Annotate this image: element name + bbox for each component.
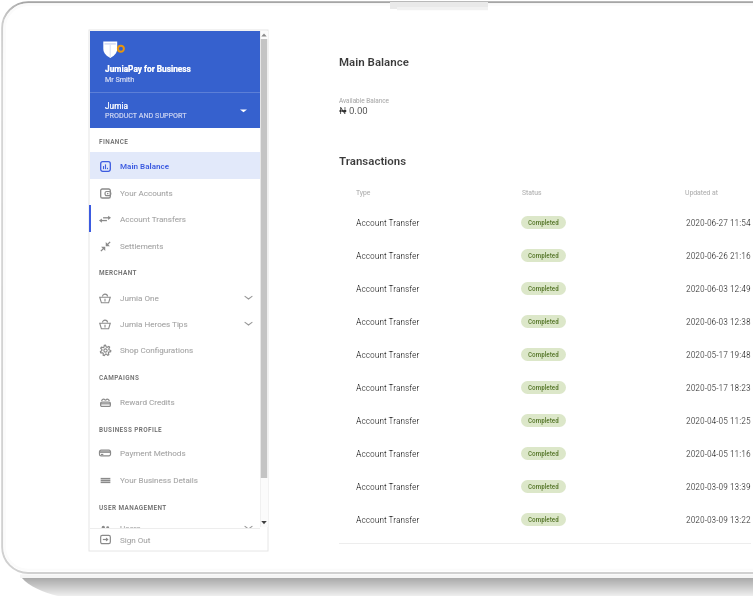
button[interactable]: Jumia	[90, 95, 260, 125]
button[interactable]: Account Transfer	[339, 503, 751, 536]
button[interactable]: Users	[90, 514, 260, 528]
staticText: Your Accounts	[120, 188, 173, 197]
staticText: 2020-06-03 12:38	[686, 317, 751, 327]
staticText: Type	[356, 189, 371, 197]
staticText: Completed	[528, 516, 559, 523]
staticText: Account Transfer	[356, 416, 420, 426]
staticText: CAMPAIGNS	[99, 374, 140, 382]
staticText: 2020-06-26 21:16	[686, 251, 751, 261]
staticText: 2020-03-09 13:39	[686, 482, 751, 492]
staticText: 2020-05-17 19:48	[686, 350, 751, 360]
other: Switch account	[240, 107, 247, 114]
staticText: JumiaPay for Business	[105, 64, 191, 74]
staticText: Main Balance	[339, 55, 409, 68]
staticText: Your Business Details	[120, 475, 198, 484]
staticText: Available Balance	[339, 97, 389, 105]
staticText: 2020-04-05 11:16	[686, 449, 751, 459]
staticText: Reward Credits	[120, 397, 175, 406]
staticText: Status	[522, 189, 542, 197]
staticText: Main Balance	[120, 161, 170, 170]
button[interactable]: Account Transfer	[339, 305, 751, 338]
button[interactable]: Reward Credits	[90, 388, 260, 415]
button[interactable]: Account Transfer	[339, 239, 751, 272]
button[interactable]: Your Accounts	[90, 179, 260, 206]
staticText: Completed	[528, 318, 559, 325]
staticText: Account Transfer	[356, 317, 420, 327]
staticText: Settlements	[120, 241, 164, 250]
button[interactable]: Shop Configurations	[90, 336, 260, 363]
staticText: Completed	[528, 417, 559, 424]
staticText: MERCHANT	[99, 269, 137, 277]
button[interactable]: Your Business Details	[90, 466, 260, 493]
button[interactable]: Jumia Heroes Tips	[90, 310, 260, 337]
staticText: Account Transfer	[356, 383, 420, 393]
staticText: Updated at	[685, 189, 719, 197]
staticText: Users	[120, 523, 141, 528]
staticText: Completed	[528, 384, 559, 391]
other: JumiaPay logo	[103, 41, 123, 59]
staticText: Transactions	[339, 154, 407, 167]
staticText: ₦ 0.00	[339, 105, 368, 116]
staticText: BUSINESS PROFILE	[99, 426, 163, 434]
staticText: Completed	[528, 219, 559, 226]
staticText: Jumia One	[120, 293, 159, 302]
staticText: Account Transfer	[356, 515, 420, 525]
staticText: Account Transfers	[120, 214, 186, 223]
staticText: Account Transfer	[356, 350, 420, 360]
staticText: Account Transfer	[356, 251, 420, 261]
button[interactable]: Sign Out	[90, 528, 260, 550]
staticText: USER MANAGEMENT	[99, 504, 167, 512]
staticText: Completed	[528, 483, 559, 490]
button[interactable]: Account Transfer	[339, 470, 751, 503]
button[interactable]: Main Balance	[90, 152, 260, 179]
staticText: Completed	[528, 285, 559, 292]
staticText: Payment Methods	[120, 448, 186, 457]
button[interactable]: Settlements	[90, 232, 260, 259]
staticText: Account Transfer	[356, 218, 420, 228]
staticText: Account Transfer	[356, 482, 420, 492]
staticText: Completed	[528, 450, 559, 457]
button[interactable]: Account Transfer	[339, 338, 751, 371]
button[interactable]: Account Transfer	[339, 272, 751, 305]
staticText: 2020-06-03 12:49	[686, 284, 751, 294]
button[interactable]: Jumia One	[90, 284, 260, 311]
staticText: 2020-04-05 11:25	[686, 416, 751, 426]
staticText: Account Transfer	[356, 449, 420, 459]
staticText: FINANCE	[99, 138, 129, 146]
button[interactable]: Account Transfer	[339, 404, 751, 437]
staticText: Account Transfer	[356, 284, 420, 294]
staticText: 2020-06-27 11:54	[686, 218, 751, 228]
button[interactable]: Payment Methods	[90, 439, 260, 466]
staticText: Sign Out	[120, 535, 151, 544]
button[interactable]: Account Transfer	[339, 371, 751, 404]
button[interactable]: Account Transfers	[90, 205, 260, 232]
staticText: Shop Configurations	[120, 345, 194, 354]
staticText: 2020-05-17 18:23	[686, 383, 751, 393]
staticText: Jumia	[105, 101, 128, 111]
staticText: Jumia Heroes Tips	[120, 319, 188, 328]
staticText: 2020-03-09 13:22	[686, 515, 751, 525]
staticText: Mr Smith	[105, 75, 135, 83]
staticText: PRODUCT AND SUPPORT	[105, 111, 187, 119]
staticText: Completed	[528, 252, 559, 259]
button[interactable]: Account Transfer	[339, 437, 751, 470]
staticText: Completed	[528, 351, 559, 358]
button[interactable]: Account Transfer	[339, 206, 751, 239]
